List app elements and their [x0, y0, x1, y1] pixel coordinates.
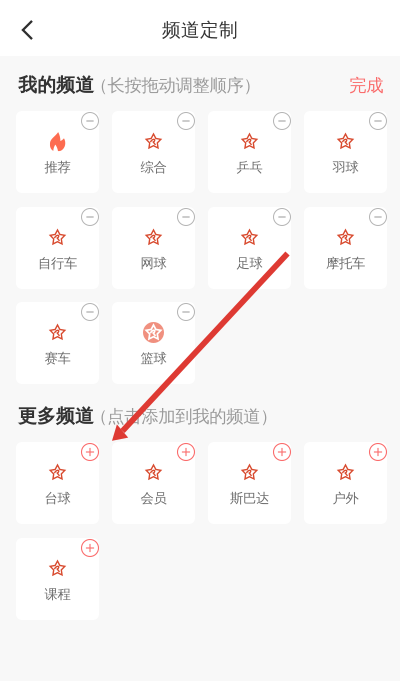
staticText: 更多频道: [18, 404, 94, 427]
button[interactable]: 足球: [208, 207, 291, 289]
staticText: 台球: [44, 490, 70, 506]
staticText: 斯巴达: [230, 490, 269, 506]
staticText: 推荐: [44, 159, 70, 175]
button[interactable]: 台球: [16, 442, 99, 524]
staticText: 我的频道: [18, 73, 94, 96]
button[interactable]: 推荐: [16, 111, 99, 193]
staticText: 乒乓: [236, 159, 262, 175]
staticText: 完成: [349, 75, 383, 96]
button[interactable]: 网球: [112, 207, 195, 289]
button[interactable]: 羽球: [304, 111, 387, 193]
staticText: 课程: [44, 586, 70, 602]
staticText: 羽球: [332, 159, 358, 175]
staticText: 综合: [140, 159, 166, 175]
button[interactable]: 乒乓: [208, 111, 291, 193]
button[interactable]: 自行车: [16, 207, 99, 289]
button[interactable]: Back: [4, 7, 50, 53]
staticText: （长按拖动调整顺序）: [90, 75, 260, 96]
staticText: 户外: [332, 490, 358, 506]
button[interactable]: 课程: [16, 538, 99, 620]
staticText: 赛车: [44, 350, 70, 366]
button[interactable]: 赛车: [16, 302, 99, 384]
button[interactable]: 斯巴达: [208, 442, 291, 524]
staticText: 会员: [140, 490, 166, 506]
button[interactable]: 完成: [349, 75, 383, 96]
button[interactable]: 会员: [112, 442, 195, 524]
staticText: 网球: [140, 255, 166, 271]
staticText: 足球: [236, 255, 262, 271]
staticText: （点击添加到我的频道）: [90, 406, 277, 427]
button[interactable]: 篮球: [112, 302, 195, 384]
button[interactable]: 户外: [304, 442, 387, 524]
staticText: 摩托车: [326, 255, 365, 271]
staticText: 频道定制: [162, 18, 238, 41]
staticText: 篮球: [140, 350, 166, 366]
staticText: 自行车: [38, 255, 77, 271]
button[interactable]: 综合: [112, 111, 195, 193]
button[interactable]: 摩托车: [304, 207, 387, 289]
